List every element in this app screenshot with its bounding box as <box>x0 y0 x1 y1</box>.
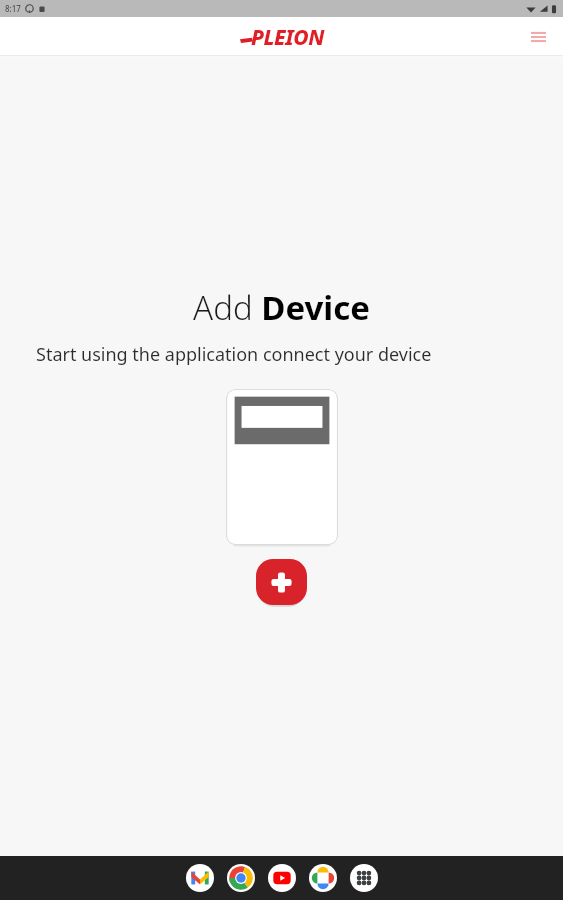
button[interactable]: Menu <box>525 24 551 50</box>
staticText: Add Device <box>193 285 370 330</box>
button[interactable]: Gmail <box>186 864 214 892</box>
button[interactable]: Device <box>226 389 338 545</box>
button[interactable]: Chrome <box>227 864 255 892</box>
staticText: 8:17 <box>5 3 21 14</box>
staticText: Start using the application connect your… <box>36 342 523 367</box>
button[interactable]: YouTube <box>268 864 296 892</box>
button[interactable]: All apps <box>350 864 378 892</box>
button[interactable]: Photos <box>309 864 337 892</box>
button[interactable]: Add device <box>256 559 307 605</box>
staticText: PLEION <box>251 23 325 52</box>
